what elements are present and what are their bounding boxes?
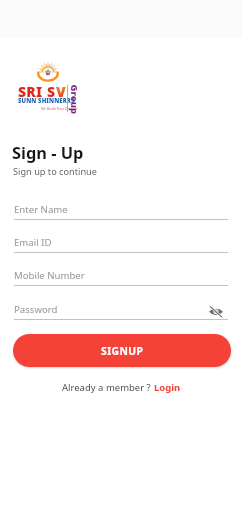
staticText: Password xyxy=(14,303,58,316)
button[interactable]: Login xyxy=(154,381,181,394)
staticText: Enter Name xyxy=(14,203,68,216)
staticText: Login xyxy=(154,381,181,394)
staticText: Mobile Number xyxy=(14,269,85,282)
staticText: SRI xyxy=(18,82,43,101)
staticText: Sign up to continue xyxy=(13,165,97,178)
button[interactable]: Enter Name xyxy=(14,203,228,220)
staticText: S xyxy=(47,82,56,101)
staticText: SIGNUP xyxy=(101,344,144,358)
button[interactable]: SIGNUP xyxy=(13,334,231,367)
button[interactable]: Password xyxy=(14,303,228,320)
staticText: Already a member ? xyxy=(62,381,154,394)
staticText: We Build Your Dreams xyxy=(41,106,78,111)
button[interactable]: Email ID xyxy=(14,236,228,253)
button[interactable]: Mobile Number xyxy=(14,269,228,286)
staticText: Email ID xyxy=(14,236,52,249)
button[interactable]: Toggle password visibility xyxy=(207,303,225,320)
staticText: V xyxy=(56,82,66,101)
staticText: SUNN SHINNERRS xyxy=(18,97,75,105)
staticText: Sign - Up xyxy=(12,141,84,163)
staticText: Group xyxy=(67,84,80,114)
